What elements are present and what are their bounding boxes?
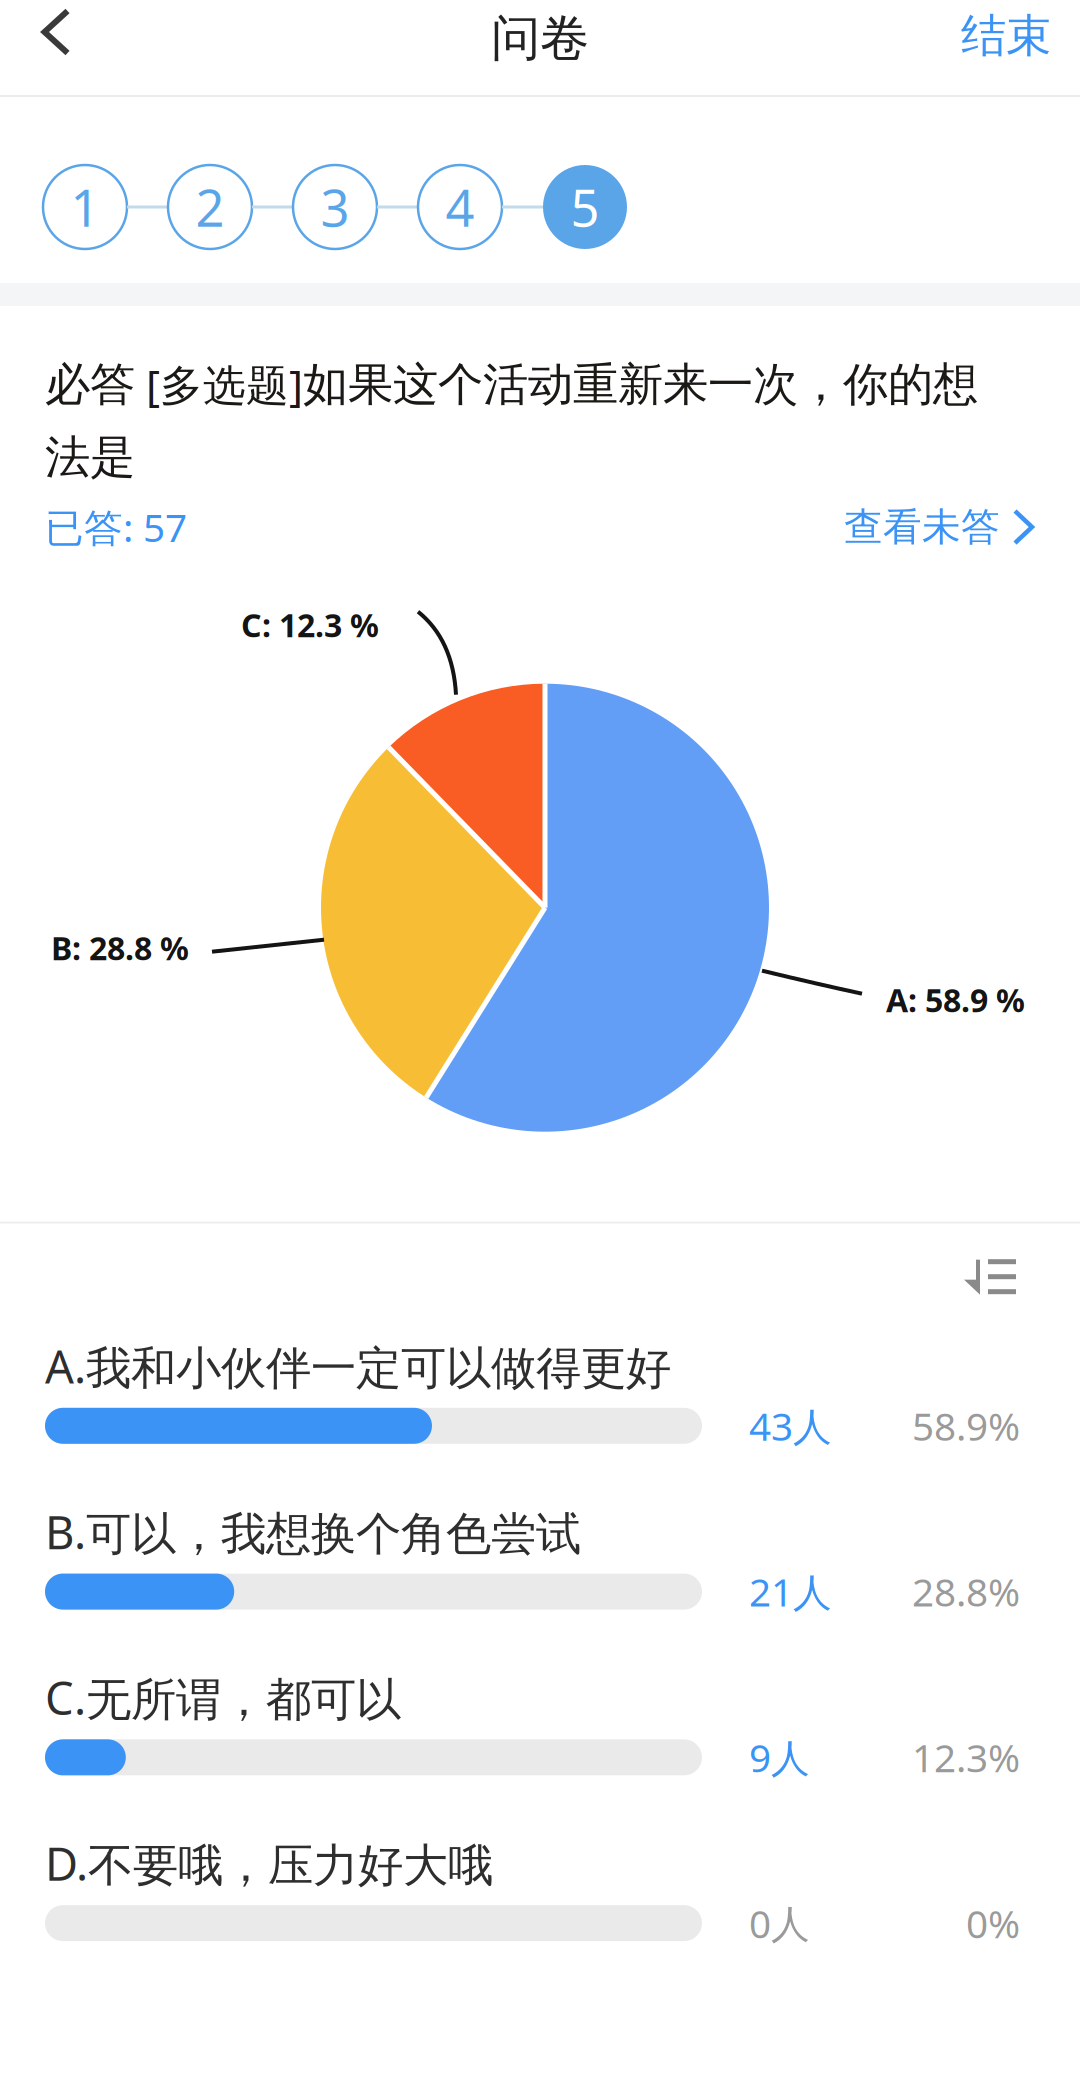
staticText: 0人 [749, 1897, 810, 1949]
button[interactable]: 查看未答 [844, 503, 1035, 551]
staticText: 28.8% [912, 1566, 1020, 1617]
staticText: A: 58.9 % [886, 979, 1025, 1021]
staticText: 21人 [749, 1566, 832, 1617]
button[interactable]: A.我和小伙伴一定可以做得更好 [45, 1313, 1035, 1451]
staticText: 43人 [749, 1400, 832, 1451]
staticText: 9人 [749, 1732, 810, 1783]
staticText: C: 12.3 % [241, 604, 379, 646]
staticText: 必答 [多选题]如果这个活动重新来一次，你的想法是 [45, 356, 978, 485]
button[interactable]: 5 [543, 165, 627, 249]
staticText: 0% [966, 1897, 1020, 1949]
button[interactable]: C.无所谓，都可以 [45, 1644, 1035, 1783]
staticText: 查看未答 [844, 503, 1000, 551]
staticText: C.无所谓，都可以 [45, 1667, 401, 1728]
staticText: 4 [445, 173, 474, 241]
staticText: A.我和小伙伴一定可以做得更好 [45, 1336, 671, 1396]
staticText: 问卷 [491, 8, 589, 69]
staticText: 已答: 57 [45, 501, 187, 553]
staticText: D.不要哦，压力好大哦 [45, 1833, 493, 1893]
staticText: 12.3% [912, 1732, 1020, 1783]
button[interactable]: 4 [418, 165, 502, 249]
staticText: 2 [195, 173, 224, 241]
button[interactable]: 3 [293, 165, 377, 249]
staticText: 3 [320, 173, 349, 241]
button[interactable]: Back [0, 8, 112, 78]
staticText: 结束 [961, 8, 1051, 64]
staticText: B.可以，我想换个角色尝试 [45, 1501, 581, 1562]
staticText: 58.9% [912, 1400, 1020, 1451]
staticText: B: 28.8 % [51, 927, 189, 969]
button[interactable]: 1 [43, 165, 127, 249]
button[interactable]: 结束 [932, 8, 1080, 78]
button[interactable]: D.不要哦，压力好大哦 [45, 1810, 1035, 1949]
button[interactable]: 2 [168, 165, 252, 249]
staticText: 1 [70, 173, 99, 241]
button[interactable]: Sort [964, 1260, 1018, 1296]
staticText: 5 [570, 173, 599, 241]
button[interactable]: B.可以，我想换个角色尝试 [45, 1478, 1035, 1617]
